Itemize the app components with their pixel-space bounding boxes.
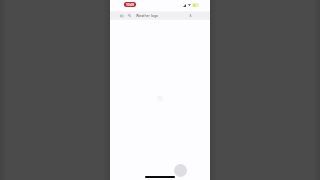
button[interactable]: Voice search bbox=[187, 12, 194, 19]
button[interactable]: Weather logo bbox=[126, 11, 184, 20]
staticText: Weather logo bbox=[136, 13, 159, 18]
button[interactable]: Assistant bbox=[174, 164, 187, 177]
button[interactable]: Ongoing call bbox=[124, 2, 136, 7]
staticText: 10:09 bbox=[126, 3, 135, 7]
button[interactable]: Back bbox=[118, 12, 126, 20]
